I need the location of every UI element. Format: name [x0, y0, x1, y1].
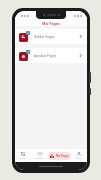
button[interactable]: Validar Pagos	[15, 29, 87, 44]
staticText: Perfil	[76, 157, 82, 160]
staticText: Inicio	[20, 157, 26, 160]
button[interactable]: Mis Pagos	[47, 149, 71, 162]
staticText: Mis Pagos	[42, 21, 60, 26]
staticText: Aprobar Pagos	[34, 54, 79, 58]
staticText: Mis Pagos	[56, 154, 69, 158]
button[interactable]: Perfil	[71, 149, 87, 162]
button[interactable]: Inicio	[15, 149, 31, 162]
button[interactable]: Cuentas	[31, 149, 47, 162]
staticText: Cuentas	[35, 157, 44, 160]
button[interactable]: Aprobar Pagos	[15, 48, 87, 63]
staticText: Validar Pagos	[34, 35, 79, 39]
